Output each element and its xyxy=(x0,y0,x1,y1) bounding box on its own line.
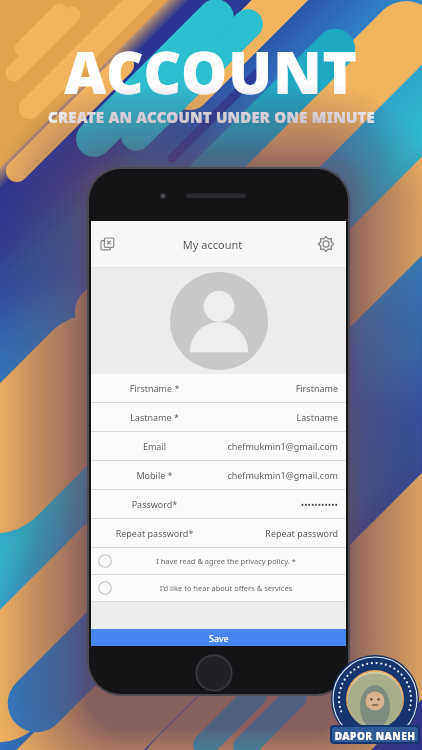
staticText: DAPOR NANEH xyxy=(333,729,417,743)
button[interactable]: Firstname * xyxy=(91,374,346,402)
button[interactable]: Repeat password* xyxy=(91,519,346,547)
staticText: ACCOUNT xyxy=(64,32,358,111)
staticText: Email xyxy=(91,440,218,452)
staticText: CREATE AN ACCOUNT UNDER ONE MINUTE xyxy=(48,107,375,127)
button[interactable]: Lastname * xyxy=(91,403,346,431)
staticText: I'd like to hear about offers & services xyxy=(112,583,340,593)
button[interactable]: I'd like to hear about offers & services xyxy=(91,575,346,601)
staticText: Firstname xyxy=(218,382,338,394)
staticText: Repeat password xyxy=(218,527,338,539)
button[interactable]: Password* xyxy=(91,490,346,518)
button[interactable]: Dapor Naneh logo xyxy=(325,648,422,750)
button[interactable]: Image xyxy=(96,233,118,255)
button[interactable]: Save xyxy=(91,629,346,646)
staticText: Mobile * xyxy=(91,469,218,481)
staticText: chefmukmin1@gmail.com xyxy=(218,440,338,452)
button[interactable]: Email xyxy=(91,432,346,460)
staticText: chefmukmin1@gmail.com xyxy=(218,469,338,481)
staticText: Password* xyxy=(91,498,218,510)
staticText: Firstname * xyxy=(91,382,218,394)
button[interactable]: Mobile * xyxy=(91,461,346,489)
staticText: Lastname * xyxy=(91,411,218,423)
button[interactable]: Settings xyxy=(315,233,337,255)
staticText: ••••••••••• xyxy=(218,498,338,510)
staticText: Lastname xyxy=(218,411,338,423)
staticText: My account xyxy=(114,237,311,252)
staticText: I have read & agree the privacy policy. … xyxy=(112,556,340,566)
button[interactable]: I have read & agree the privacy policy. … xyxy=(91,548,346,574)
button[interactable]: Home xyxy=(195,654,233,692)
staticText: Save xyxy=(209,632,229,644)
staticText: Repeat password* xyxy=(91,527,218,539)
